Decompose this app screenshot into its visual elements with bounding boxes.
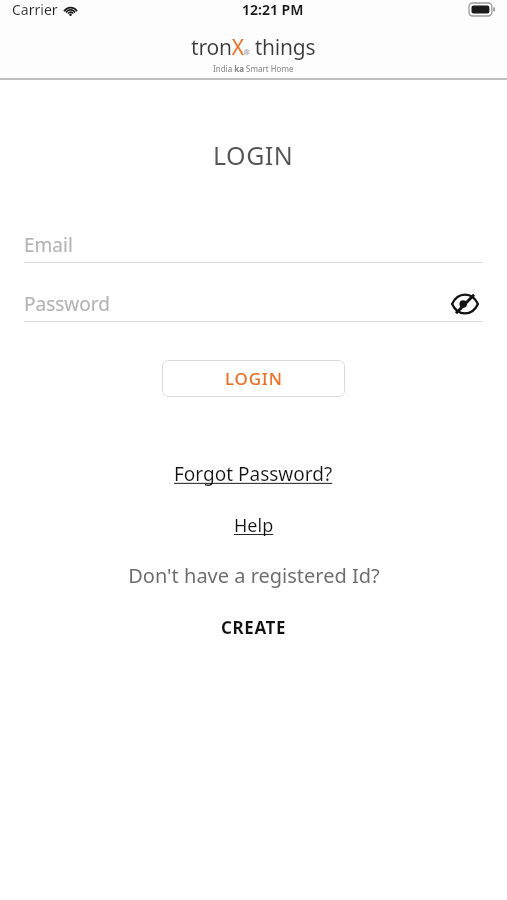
staticText: tronX® things <box>191 33 316 62</box>
button[interactable]: Help <box>230 511 278 540</box>
button[interactable]: Forgot Password? <box>170 459 337 489</box>
button[interactable]: LOGIN <box>162 360 345 397</box>
staticText: Forgot Password? <box>174 461 333 487</box>
staticText: Carrier <box>12 0 58 19</box>
staticText: LOGIN <box>225 367 283 390</box>
staticText: CREATE <box>221 616 287 639</box>
staticText: 12:21 PM <box>242 0 304 19</box>
button[interactable]: CREATE <box>213 613 295 642</box>
staticText: Don't have a registered Id? <box>128 562 380 589</box>
button[interactable]: Show password <box>447 287 483 321</box>
staticText: Email <box>24 232 73 258</box>
button[interactable]: Email <box>24 228 483 263</box>
staticText: Password <box>24 291 110 317</box>
staticText: India ka Smart Home <box>213 63 294 74</box>
staticText: LOGIN <box>213 138 294 172</box>
button[interactable]: Password <box>24 287 483 322</box>
staticText: Help <box>234 513 274 538</box>
